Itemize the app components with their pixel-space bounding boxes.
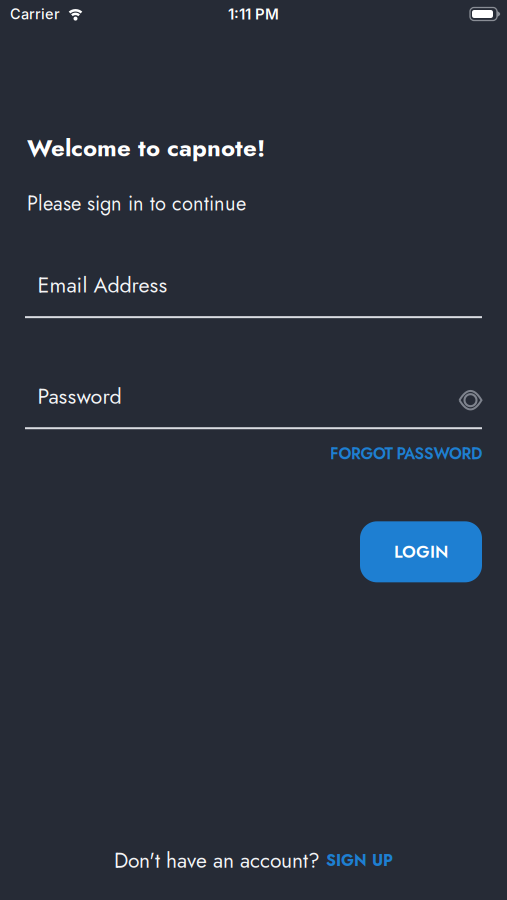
staticText: LOGIN xyxy=(394,540,448,564)
staticText: Password xyxy=(37,381,121,412)
button[interactable]: Email Address xyxy=(0,270,507,318)
button[interactable]: FORGOT PASSWORD xyxy=(330,442,482,465)
staticText: Carrier xyxy=(10,5,60,23)
staticText: Welcome to capnote! xyxy=(27,130,265,165)
button[interactable] xyxy=(458,390,482,410)
staticText: Please sign in to continue xyxy=(27,189,246,218)
staticText: 1:11 PM xyxy=(228,5,279,23)
button[interactable]: SIGN UP xyxy=(326,849,393,872)
button[interactable]: LOGIN xyxy=(360,521,482,582)
staticText: SIGN UP xyxy=(326,849,393,872)
button[interactable]: Password xyxy=(0,381,507,429)
staticText: Email Address xyxy=(37,270,167,301)
staticText: Don't have an account? xyxy=(114,845,326,875)
staticText: FORGOT PASSWORD xyxy=(330,442,482,465)
